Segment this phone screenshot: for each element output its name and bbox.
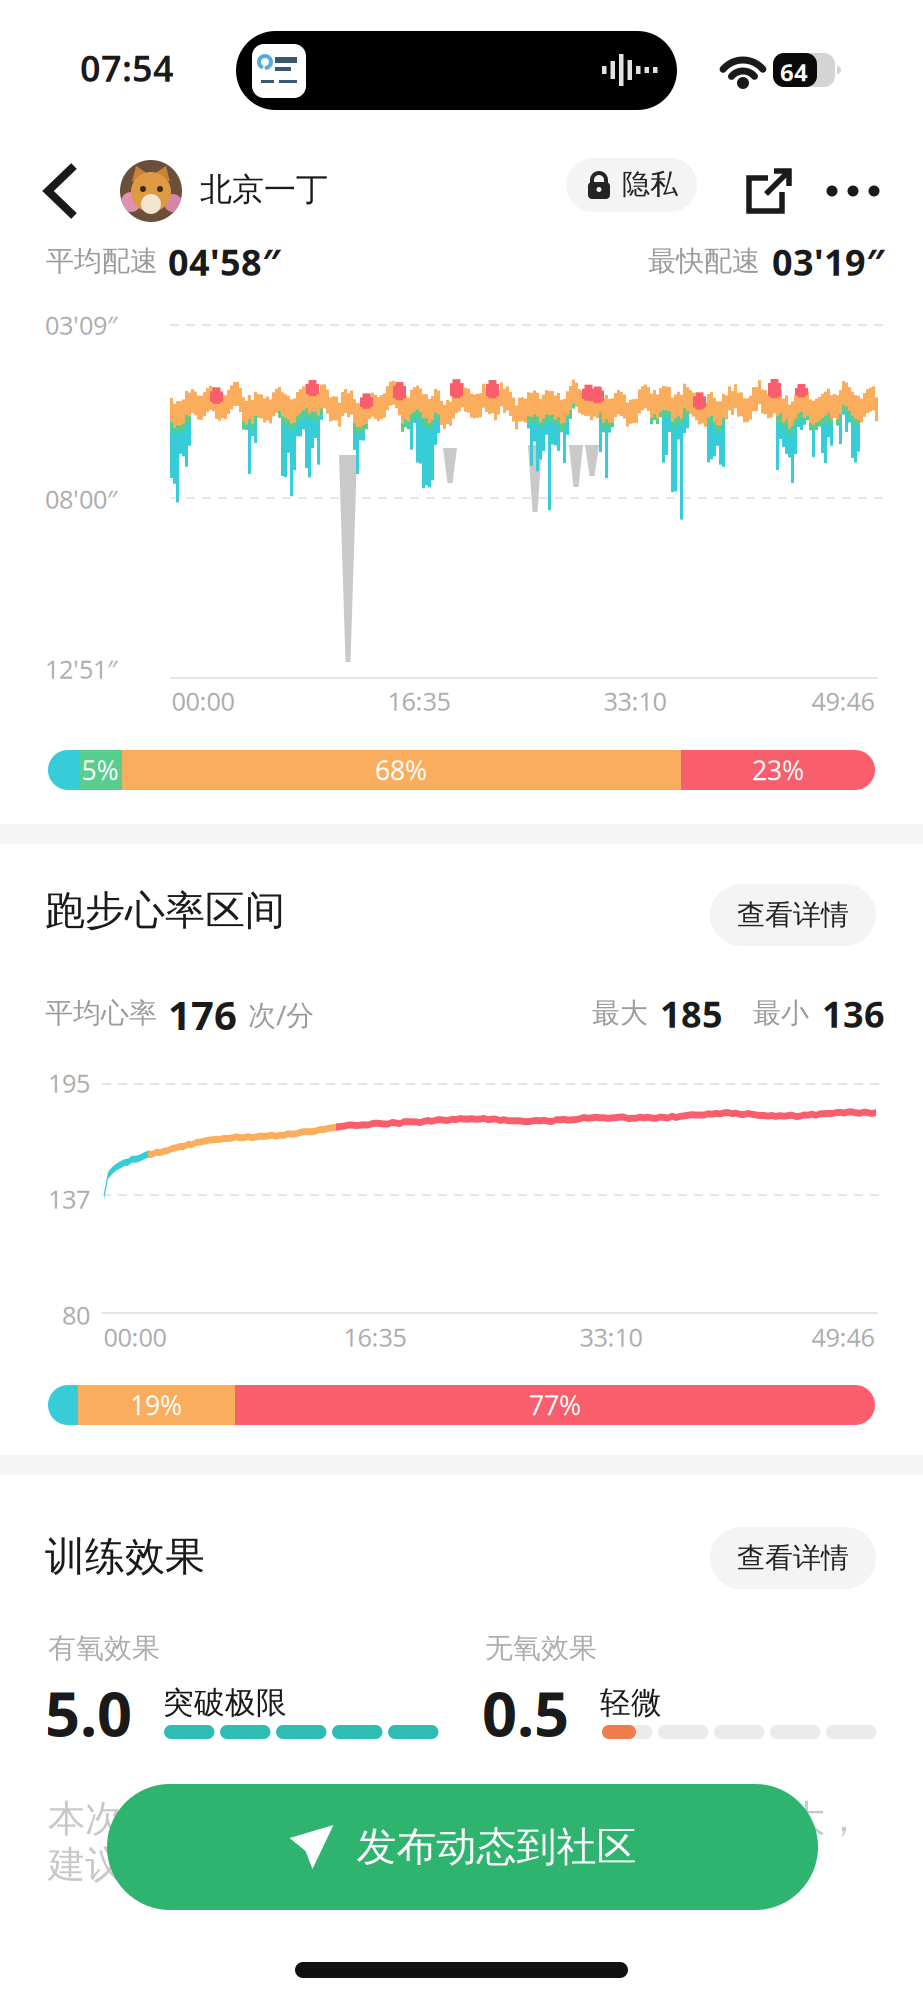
staticText: 00:00 (171, 684, 234, 718)
staticText: 136 (822, 990, 885, 1038)
staticText: 本次训练中心率长时间突破极限，心肺刺激很大， (48, 1796, 862, 1842)
staticText: 建议好好休息，下次训练前充分恢复状态 (48, 1842, 714, 1888)
staticText: 04'58″ (168, 238, 281, 286)
staticText: 64 (780, 56, 808, 88)
staticText: 5.0 (45, 1672, 132, 1753)
staticText: 发布动态到社区 (356, 1822, 636, 1871)
staticText: 03'19″ (772, 238, 885, 286)
staticText: 有氧效果 (48, 1631, 160, 1665)
staticText: 137 (48, 1182, 90, 1216)
staticText: 80 (62, 1298, 90, 1332)
button[interactable]: 查看详情 (710, 884, 876, 946)
staticText: 185 (660, 990, 723, 1038)
button[interactable]: Share (744, 168, 790, 214)
staticText: 跑步心率区间 (45, 886, 285, 935)
staticText: 5% (81, 752, 118, 788)
staticText: 无氧效果 (485, 1631, 597, 1665)
staticText: 查看详情 (737, 898, 849, 932)
staticText: 03'09″ (45, 308, 117, 342)
staticText: 训练效果 (45, 1532, 205, 1581)
staticText: 最大 (592, 996, 648, 1030)
staticText: 最快配速 (648, 244, 760, 278)
button[interactable]: Back (40, 160, 84, 222)
staticText: 次/分 (248, 996, 314, 1033)
button[interactable]: 隐私 (566, 158, 697, 212)
button[interactable]: 查看详情 (710, 1527, 876, 1589)
button[interactable]: More (826, 185, 880, 197)
button[interactable]: 发布动态到社区 (107, 1784, 818, 1910)
staticText: 平均心率 (45, 996, 157, 1030)
staticText: 查看详情 (737, 1541, 849, 1575)
staticText: 16:35 (387, 684, 450, 718)
staticText: 轻微 (600, 1684, 662, 1722)
staticText: 195 (48, 1066, 90, 1100)
staticText: 突破极限 (163, 1684, 287, 1722)
staticText: 68% (375, 752, 427, 788)
staticText: 08'00″ (45, 482, 117, 516)
staticText: 77% (529, 1387, 581, 1423)
staticText: 00:00 (103, 1320, 166, 1354)
staticText: 33:10 (603, 684, 666, 718)
staticText: 16:35 (343, 1320, 406, 1354)
staticText: 12'51″ (45, 652, 117, 686)
staticText: 北京一丁 (200, 170, 328, 209)
staticText: 23% (752, 752, 804, 788)
staticText: 平均配速 (46, 244, 158, 278)
staticText: 07:54 (80, 44, 174, 92)
staticText: 49:46 (811, 1320, 874, 1354)
staticText: 176 (168, 988, 237, 1041)
staticText: 最小 (753, 996, 809, 1030)
staticText: 33:10 (579, 1320, 642, 1354)
staticText: 49:46 (811, 684, 874, 718)
staticText: 隐私 (622, 167, 678, 201)
staticText: 0.5 (482, 1672, 569, 1753)
staticText: 19% (130, 1387, 182, 1423)
